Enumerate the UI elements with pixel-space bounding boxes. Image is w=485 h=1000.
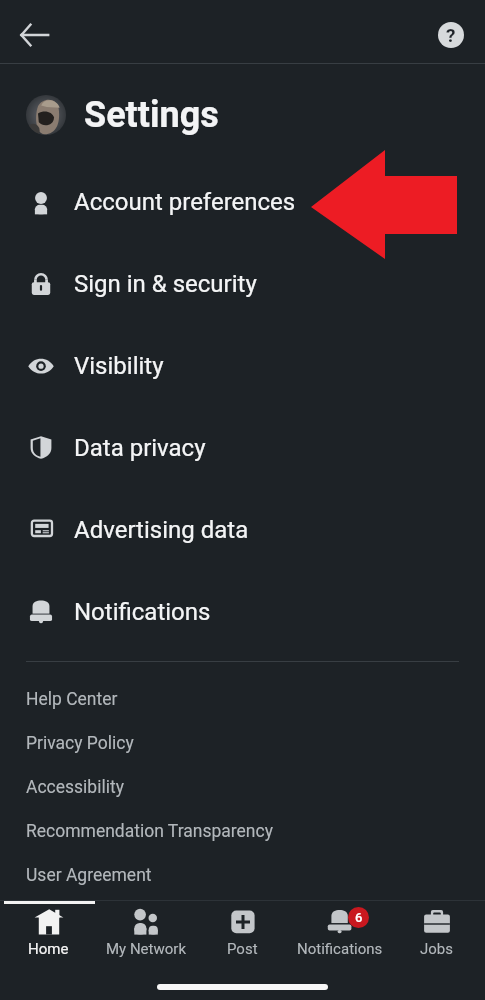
- staticText: Post: [227, 940, 258, 958]
- staticText: Notifications: [297, 940, 383, 958]
- button[interactable]: Jobs: [388, 901, 485, 963]
- button[interactable]: Sign in & security: [0, 243, 485, 325]
- staticText: Privacy Policy: [26, 733, 134, 754]
- staticText: My Network: [106, 940, 186, 958]
- button[interactable]: Home: [0, 901, 97, 963]
- button[interactable]: Help Center: [0, 677, 485, 721]
- staticText: Sign in & security: [74, 270, 257, 298]
- staticText: Notifications: [74, 598, 211, 626]
- staticText: Visibility: [74, 352, 164, 380]
- staticText: Advertising data: [74, 516, 249, 544]
- button[interactable]: Notifications: [0, 571, 485, 653]
- staticText: Home: [28, 940, 69, 958]
- button[interactable]: Back: [11, 11, 59, 59]
- staticText: ?: [446, 24, 456, 46]
- button[interactable]: Accessibility: [0, 765, 485, 809]
- button[interactable]: Recommendation Transparency: [0, 809, 485, 853]
- button[interactable]: Account preferences: [0, 161, 485, 243]
- button[interactable]: Privacy Policy: [0, 721, 485, 765]
- staticText: Settings: [84, 94, 219, 136]
- button[interactable]: Post: [194, 901, 291, 963]
- staticText: Help Center: [26, 689, 118, 710]
- button[interactable]: Profile photo: [26, 95, 66, 135]
- button[interactable]: My Network: [97, 901, 194, 963]
- button[interactable]: 6: [291, 901, 388, 963]
- staticText: Accessibility: [26, 777, 124, 798]
- button[interactable]: Visibility: [0, 325, 485, 407]
- staticText: Data privacy: [74, 434, 206, 462]
- staticText: 6: [355, 910, 363, 925]
- staticText: Jobs: [420, 940, 453, 958]
- button[interactable]: Advertising data: [0, 489, 485, 571]
- staticText: Account preferences: [74, 188, 296, 216]
- staticText: Recommendation Transparency: [26, 821, 273, 842]
- staticText: User Agreement: [26, 865, 152, 886]
- button[interactable]: Data privacy: [0, 407, 485, 489]
- button[interactable]: Help: [431, 15, 471, 55]
- button[interactable]: User Agreement: [0, 853, 485, 897]
